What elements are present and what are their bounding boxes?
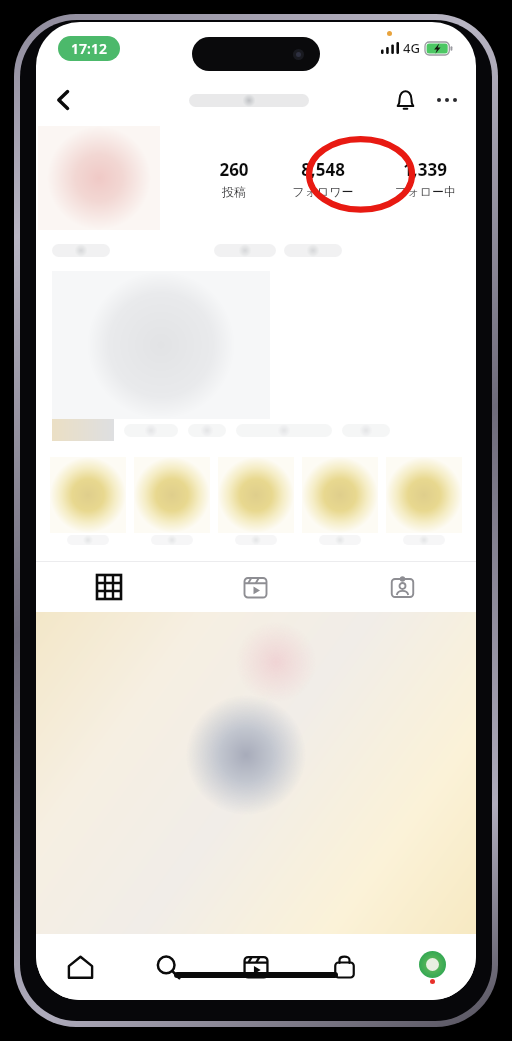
button[interactable] <box>382 457 466 545</box>
button[interactable] <box>214 457 298 545</box>
button[interactable] <box>46 457 130 545</box>
button[interactable]: 1,339 <box>374 158 476 199</box>
staticText: 1,339 <box>403 158 447 181</box>
button[interactable]: Profile <box>388 934 476 1000</box>
button[interactable]: Search <box>124 934 212 1000</box>
button[interactable]: Post photo <box>36 612 476 934</box>
button[interactable]: Shop <box>300 934 388 1000</box>
button[interactable]: Reels <box>182 562 329 612</box>
button[interactable] <box>130 457 214 545</box>
button[interactable]: More options <box>426 79 468 121</box>
staticText: 17:12 <box>71 39 107 58</box>
button[interactable]: Back <box>42 78 86 122</box>
button[interactable]: 8,548 <box>272 158 374 199</box>
button[interactable]: Profile picture <box>38 126 160 230</box>
button[interactable]: Home <box>36 934 124 1000</box>
staticText: 8,548 <box>301 158 345 181</box>
button[interactable]: Notifications <box>384 79 426 121</box>
staticText: フォロー中 <box>395 184 456 199</box>
button[interactable]: 260 <box>196 158 272 199</box>
button[interactable] <box>298 457 382 545</box>
button[interactable]: Tagged <box>329 562 476 612</box>
staticText: 投稿 <box>222 184 246 199</box>
button[interactable]: Grid posts <box>36 562 182 612</box>
staticText: フォロワー <box>292 184 354 199</box>
staticText: 260 <box>219 158 249 181</box>
staticText: 4G <box>403 39 420 57</box>
button[interactable]: Reels <box>212 934 300 1000</box>
